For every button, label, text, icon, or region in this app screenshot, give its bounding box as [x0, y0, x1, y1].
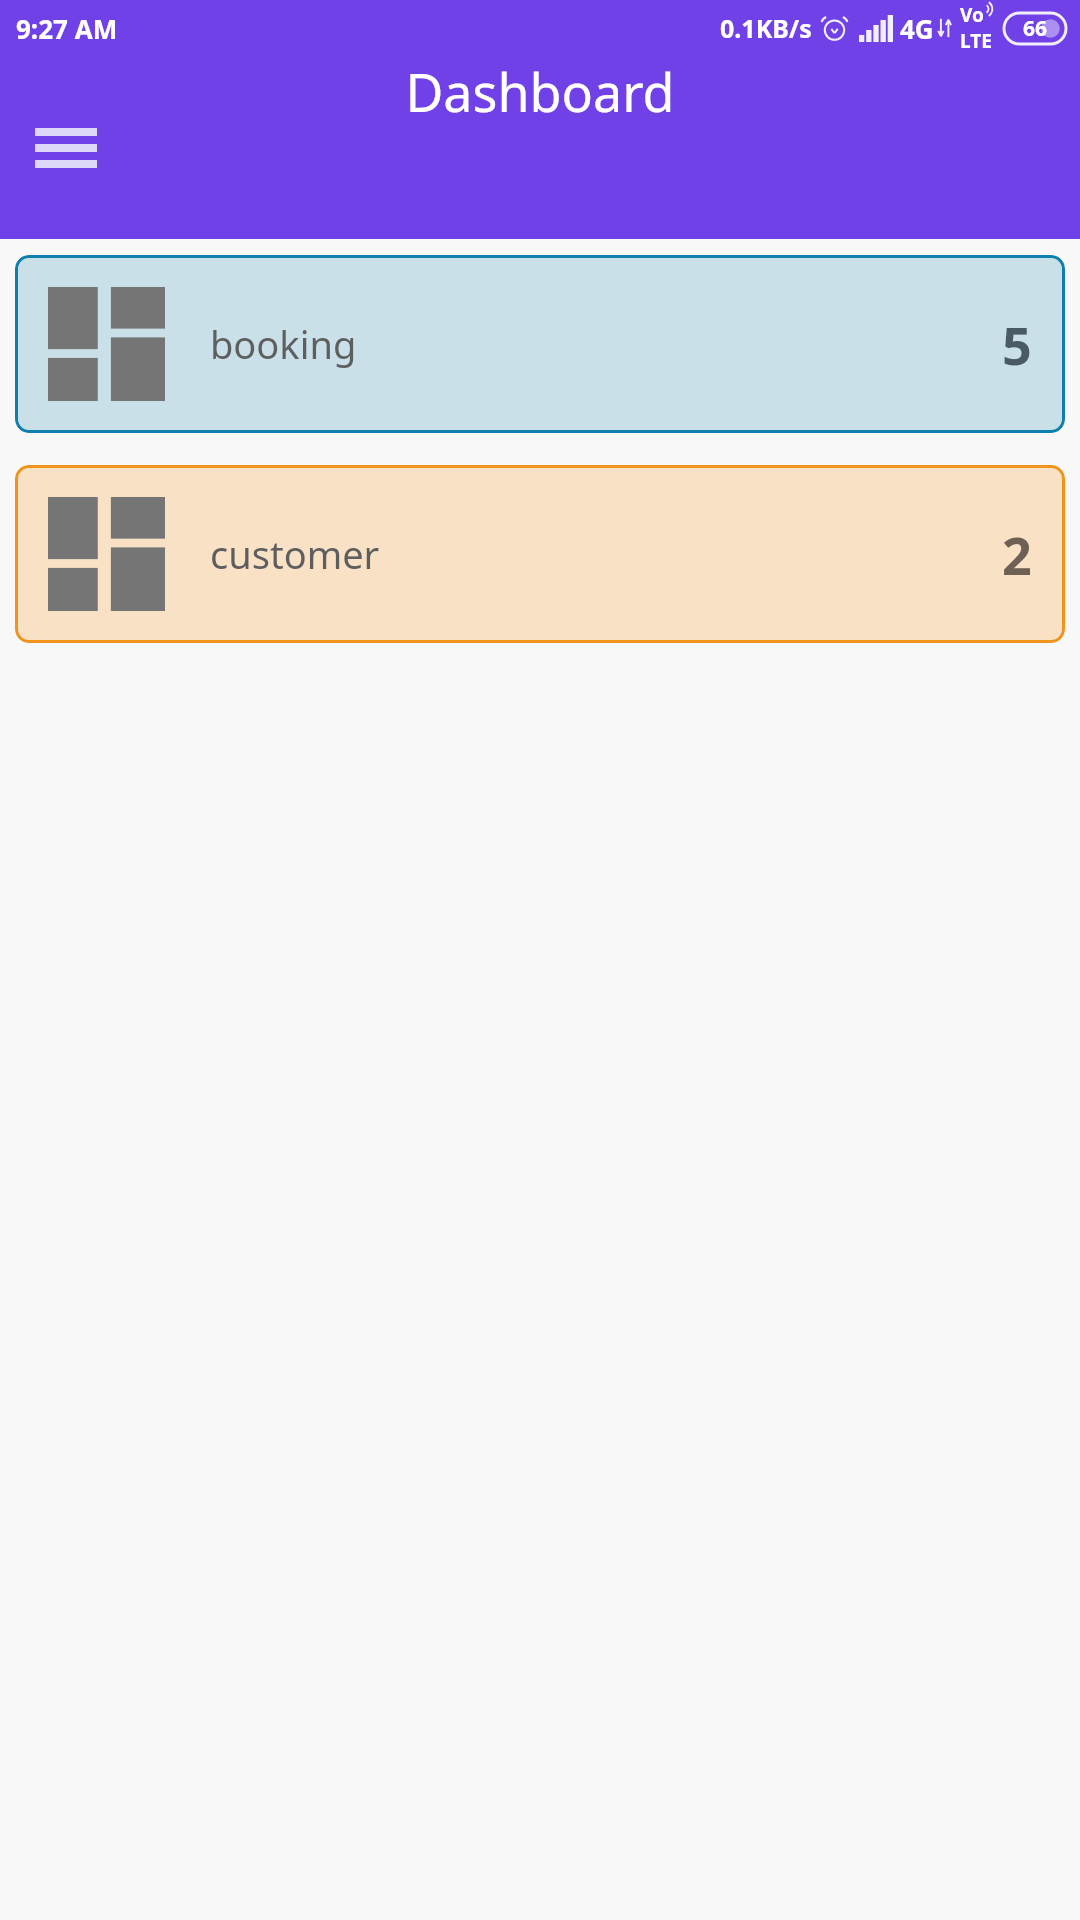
staticText: 4G [900, 11, 934, 46]
staticText: LTE [960, 28, 992, 54]
staticText: 0.1KB/s [720, 11, 812, 45]
staticText: 66 [1023, 14, 1048, 43]
button[interactable]: customer [15, 465, 1065, 643]
staticText: customer [210, 528, 380, 580]
staticText: Vo [960, 2, 984, 28]
button[interactable]: Open navigation menu [30, 112, 102, 184]
staticText: 5 [1002, 309, 1032, 380]
button[interactable]: booking [15, 255, 1065, 433]
staticText: booking [210, 318, 357, 370]
staticText: Dashboard [0, 56, 1080, 127]
staticText: 9:27 AM [16, 11, 118, 46]
staticText: 2 [1002, 519, 1032, 590]
